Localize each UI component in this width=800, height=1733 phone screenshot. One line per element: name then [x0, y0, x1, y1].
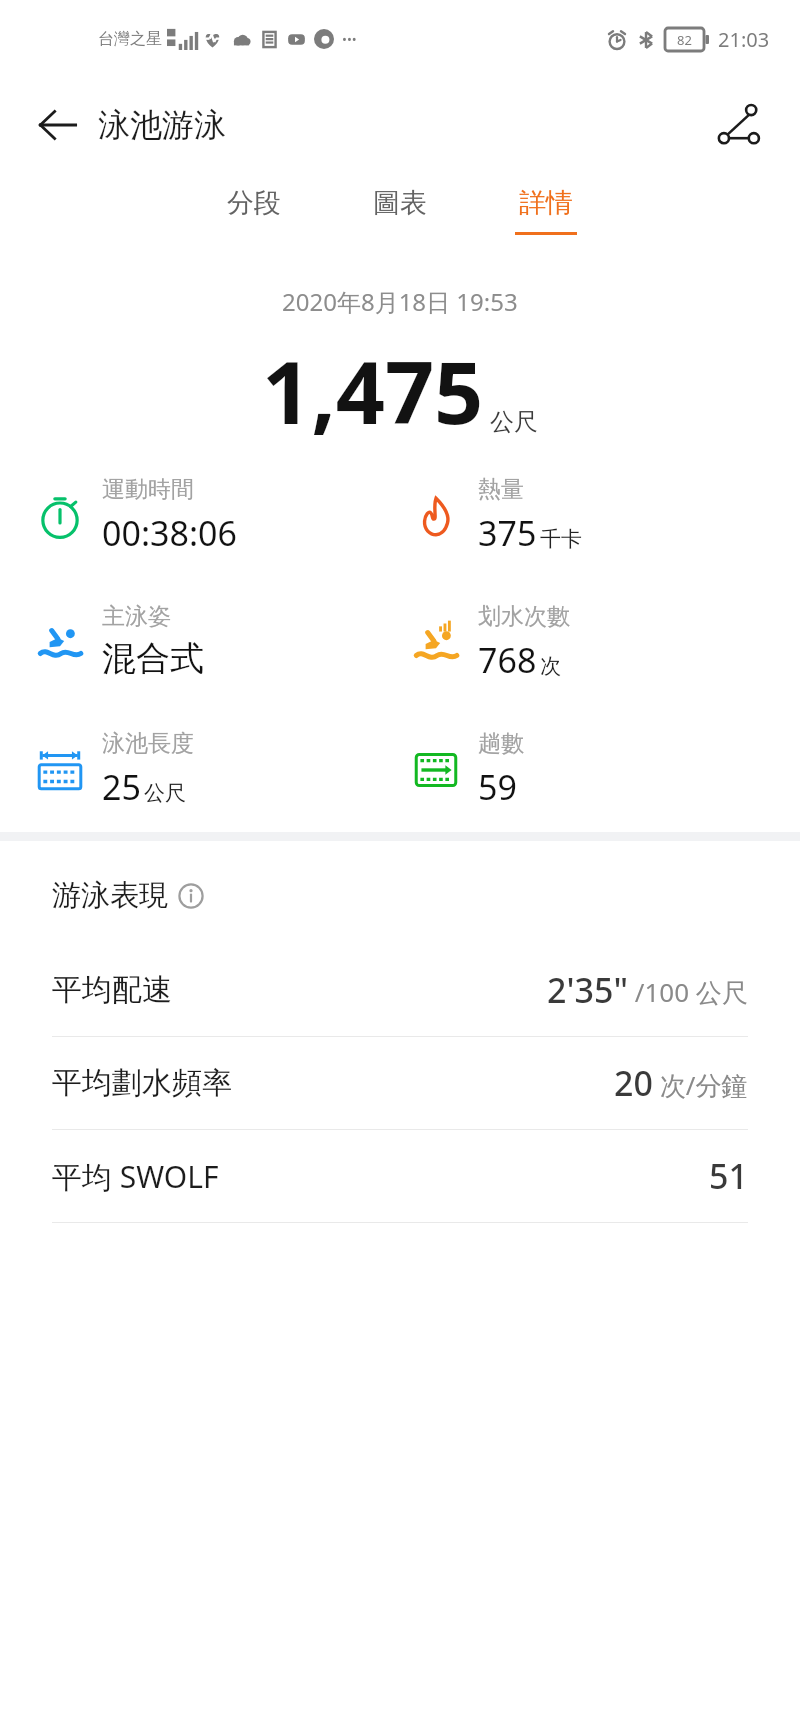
staticText: 00:38:06 [102, 510, 237, 556]
staticText: 公尺 [490, 407, 538, 437]
staticText: 25 [102, 764, 141, 810]
staticText: 2020年8月18日 19:53 [282, 285, 518, 318]
button[interactable]: 趟數 [410, 729, 524, 810]
button[interactable]: Share [708, 95, 768, 155]
button[interactable]: 熱量 [410, 475, 582, 556]
staticText: /100 公尺 [628, 974, 748, 1010]
button[interactable]: 平均 SWOLF [52, 1130, 748, 1222]
button[interactable]: 平均劃水頻率 [52, 1037, 748, 1129]
button[interactable]: 平均配速 [52, 944, 748, 1036]
staticText: 平均劃水頻率 [52, 1064, 232, 1102]
button[interactable]: 泳池長度 [34, 729, 194, 810]
staticText: 21:03 [718, 26, 770, 53]
staticText: 混合式 [102, 637, 204, 680]
staticText: 次/分鐘 [653, 1067, 748, 1103]
staticText: 51 [709, 1153, 748, 1199]
button[interactable]: Back [30, 97, 86, 153]
staticText: 熱量 [478, 475, 524, 504]
button[interactable]: 詳情 [505, 180, 587, 241]
staticText: 平均 SWOLF [52, 1156, 219, 1197]
staticText: 泳池游泳 [98, 105, 226, 145]
button[interactable]: 運動時間 [34, 475, 237, 556]
staticText: 趟數 [478, 729, 524, 758]
staticText: 台灣之星 [98, 29, 162, 49]
staticText: ••• [342, 30, 357, 48]
button[interactable]: 游泳表現 [52, 877, 204, 914]
button[interactable]: 分段 [213, 180, 295, 241]
staticText: 2'35" [547, 967, 628, 1013]
staticText: 主泳姿 [102, 602, 171, 631]
staticText: 游泳表現 [52, 877, 168, 914]
staticText: 泳池長度 [102, 729, 194, 758]
staticText: 20 [614, 1060, 653, 1106]
staticText: 1,475 [262, 332, 484, 449]
staticText: 分段 [227, 186, 281, 220]
staticText: 圖表 [373, 186, 427, 220]
staticText: 59 [478, 764, 517, 810]
staticText: 划水次數 [478, 602, 570, 631]
staticText: 375 [478, 510, 537, 556]
staticText: 次 [540, 653, 561, 679]
button[interactable]: 划水次數 [410, 602, 570, 683]
button[interactable]: 圖表 [359, 180, 441, 241]
button[interactable]: 主泳姿 [34, 602, 204, 680]
staticText: 平均配速 [52, 971, 172, 1009]
staticText: 82 [677, 31, 692, 49]
staticText: 運動時間 [102, 475, 194, 504]
staticText: 千卡 [540, 526, 582, 552]
staticText: 公尺 [144, 780, 186, 806]
staticText: 詳情 [519, 186, 573, 220]
staticText: 768 [478, 637, 537, 683]
